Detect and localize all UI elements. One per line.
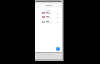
button[interactable]: Compose — [56, 47, 60, 51]
button[interactable] — [35, 15, 62, 19]
button[interactable] — [35, 20, 62, 24]
button[interactable] — [35, 11, 62, 15]
